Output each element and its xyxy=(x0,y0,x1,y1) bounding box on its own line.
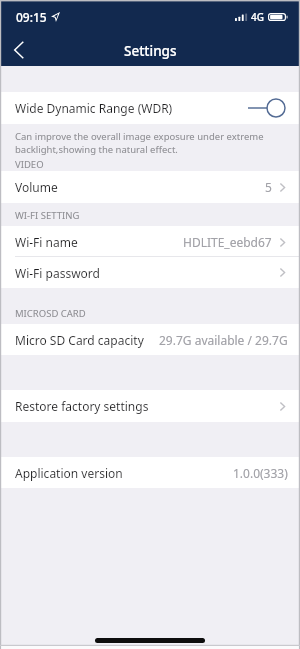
staticText: Wi-Fi name xyxy=(15,234,78,250)
button[interactable]: Micro SD Card capacity xyxy=(0,324,300,355)
staticText: VIDEO xyxy=(15,158,44,171)
staticText: Volume xyxy=(15,179,58,195)
button[interactable]: Wi-Fi name xyxy=(0,226,300,257)
staticText: Wi-Fi password xyxy=(15,265,100,281)
staticText: 1.0.0(333) xyxy=(233,465,288,481)
staticText: Settings xyxy=(124,42,177,60)
staticText: Wide Dynamic Range (WDR) xyxy=(15,100,173,116)
button[interactable]: Back xyxy=(0,34,40,66)
button[interactable]: Wide Dynamic Range (WDR) xyxy=(0,92,300,124)
button[interactable]: Restore factory settings xyxy=(0,390,300,422)
staticText: Application version xyxy=(15,465,123,481)
staticText: 29.7G available / 29.7G xyxy=(159,332,288,348)
button[interactable]: Wi-Fi password xyxy=(0,257,300,288)
staticText: 09:15 xyxy=(16,9,47,25)
staticText: 4G xyxy=(251,10,264,24)
button[interactable]: Volume xyxy=(0,171,300,203)
staticText: HDLITE_eebd67 xyxy=(183,234,272,250)
staticText: MICROSD CARD xyxy=(15,307,86,320)
staticText: Micro SD Card capacity xyxy=(15,332,144,348)
button[interactable]: Application version xyxy=(0,457,300,488)
staticText: 5 xyxy=(265,179,272,195)
staticText: Restore factory settings xyxy=(15,398,149,414)
staticText: WI-FI SETTING xyxy=(15,209,80,222)
staticText: Can improve the overall image exposure u… xyxy=(15,130,264,143)
staticText: backlight,showing the natural effect. xyxy=(15,143,178,156)
